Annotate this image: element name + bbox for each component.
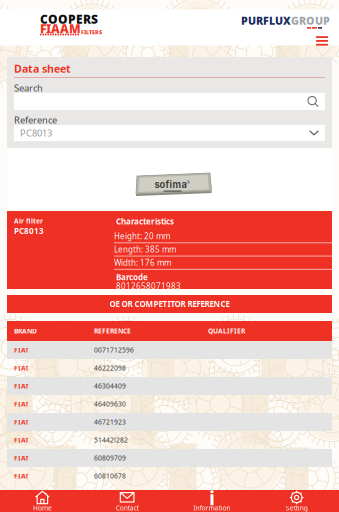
button[interactable]: FIAT bbox=[7, 395, 332, 413]
staticText: FIAT bbox=[14, 436, 29, 444]
staticText: FIAT bbox=[14, 472, 29, 480]
staticText: i bbox=[209, 484, 215, 511]
staticText: Contact bbox=[116, 504, 139, 512]
button[interactable]: FIAT bbox=[7, 341, 332, 359]
staticText: 51442!282 bbox=[94, 436, 128, 444]
staticText: Air filter bbox=[14, 217, 43, 225]
button[interactable]: Setting bbox=[254, 490, 339, 512]
button[interactable]: FIAT bbox=[7, 449, 332, 467]
staticText: ® bbox=[186, 179, 190, 186]
staticText: FIAT bbox=[14, 400, 29, 408]
staticText: GROUP bbox=[291, 13, 330, 28]
staticText: 0071712596 bbox=[94, 346, 134, 354]
staticText: FILTERS bbox=[81, 29, 102, 36]
staticText: FIAT bbox=[14, 364, 29, 372]
staticText: Length: 385 mm bbox=[114, 244, 176, 255]
button[interactable]: Menu bbox=[314, 34, 330, 48]
staticText: 60809709 bbox=[94, 454, 126, 462]
staticText: Characteristics bbox=[116, 216, 174, 227]
button[interactable]: PC8013 bbox=[14, 125, 325, 141]
staticText: 46721923 bbox=[94, 418, 126, 426]
staticText: COOPERS bbox=[40, 11, 98, 27]
staticText: Width: 176 mm bbox=[114, 257, 171, 268]
staticText: BRAND bbox=[14, 327, 37, 335]
staticText: Data sheet bbox=[14, 61, 71, 76]
staticText: Setting bbox=[286, 504, 308, 512]
button[interactable]: i bbox=[169, 490, 254, 512]
staticText: 46409630 bbox=[94, 400, 126, 408]
button[interactable]: OE OR COMPETITOR REFERENCE bbox=[7, 295, 332, 313]
staticText: 60810678 bbox=[94, 472, 126, 480]
staticText: Search bbox=[14, 82, 43, 94]
button[interactable]: Contact bbox=[85, 490, 170, 512]
button[interactable]: FIAT bbox=[7, 377, 332, 395]
staticText: 46304409 bbox=[94, 382, 126, 390]
staticText: Information bbox=[193, 504, 230, 512]
staticText: 46222098 bbox=[94, 364, 126, 372]
staticText: PURFLUX bbox=[241, 13, 291, 28]
staticText: Barcode bbox=[116, 272, 148, 282]
staticText: Height: 20 mm bbox=[114, 231, 170, 241]
staticText: FIAAM bbox=[40, 21, 81, 37]
staticText: Home bbox=[33, 504, 52, 512]
staticText: Reference bbox=[14, 114, 57, 126]
button[interactable]: FIAT bbox=[7, 431, 332, 449]
staticText: OE OR COMPETITOR REFERENCE bbox=[109, 299, 229, 309]
staticText: FIAT bbox=[14, 346, 29, 354]
staticText: QUALIFIER bbox=[208, 327, 245, 335]
staticText: REFERENCE bbox=[94, 327, 131, 335]
button[interactable]: Home bbox=[0, 490, 85, 512]
staticText: sofima bbox=[154, 179, 186, 190]
staticText: FIAT bbox=[14, 418, 29, 426]
button[interactable]: FIAT bbox=[7, 467, 332, 485]
staticText: FIAT bbox=[14, 454, 29, 462]
staticText: 8012658071983 bbox=[116, 281, 181, 291]
button[interactable]: FIAT bbox=[7, 413, 332, 431]
staticText: PC8013 bbox=[14, 226, 44, 236]
staticText: FIAT bbox=[14, 382, 29, 390]
button[interactable]: FIAT bbox=[7, 359, 332, 377]
staticText: PC8013 bbox=[20, 127, 52, 139]
